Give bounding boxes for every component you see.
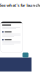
staticText: See what's for launch <box>0 2 40 8</box>
